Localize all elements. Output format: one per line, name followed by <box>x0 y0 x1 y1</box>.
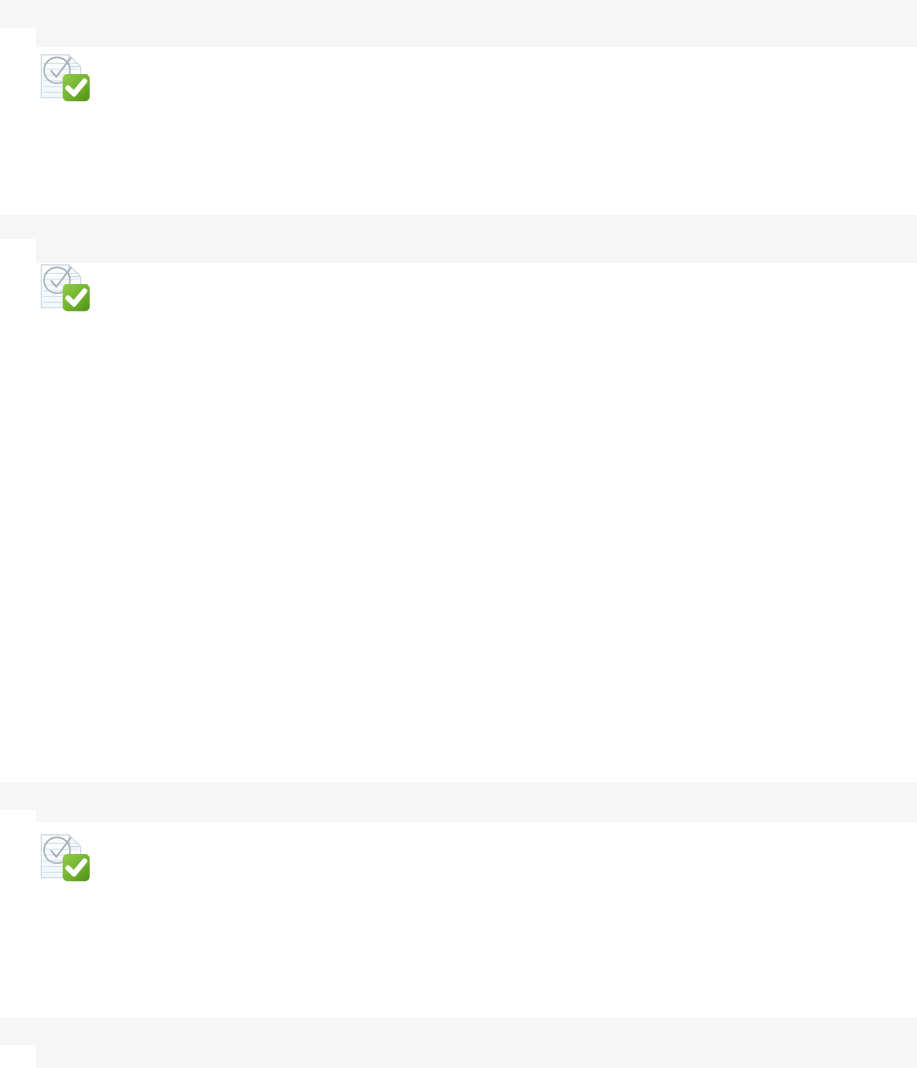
button[interactable]: Approved document <box>39 52 91 104</box>
button[interactable]: Approved document <box>39 262 91 314</box>
button[interactable]: Approved document <box>39 832 91 884</box>
